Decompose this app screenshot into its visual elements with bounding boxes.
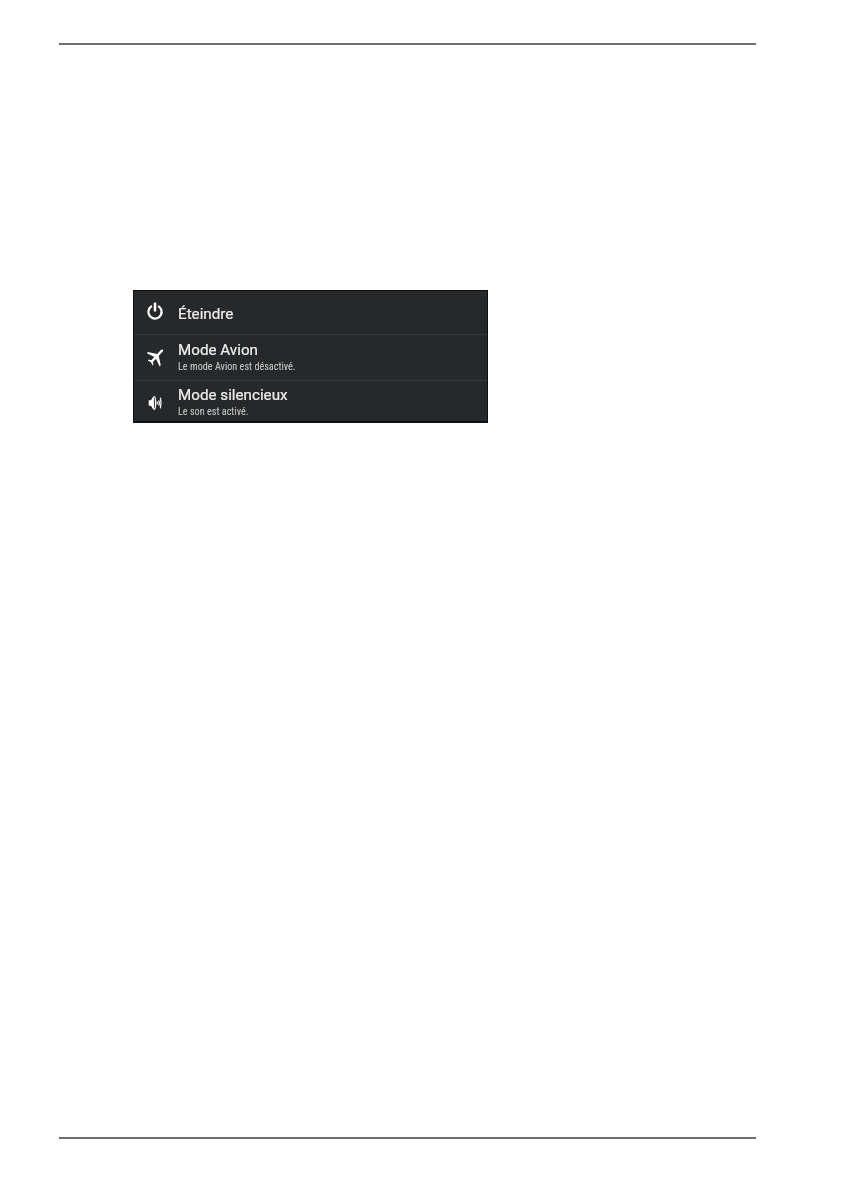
other: Power off (147, 302, 163, 320)
staticText: Le mode Avion est désactivé. (178, 361, 296, 373)
other: Silent mode (146, 394, 164, 412)
button[interactable]: Power off (134, 291, 487, 334)
staticText: Mode silencieux (178, 386, 288, 404)
staticText: Mode Avion (178, 341, 258, 359)
other: Airplane mode (146, 348, 164, 368)
staticText: Le son est activé. (178, 406, 249, 418)
button[interactable]: Silent mode (134, 380, 487, 421)
staticText: Éteindre (178, 305, 234, 323)
button[interactable]: Airplane mode (134, 334, 487, 380)
